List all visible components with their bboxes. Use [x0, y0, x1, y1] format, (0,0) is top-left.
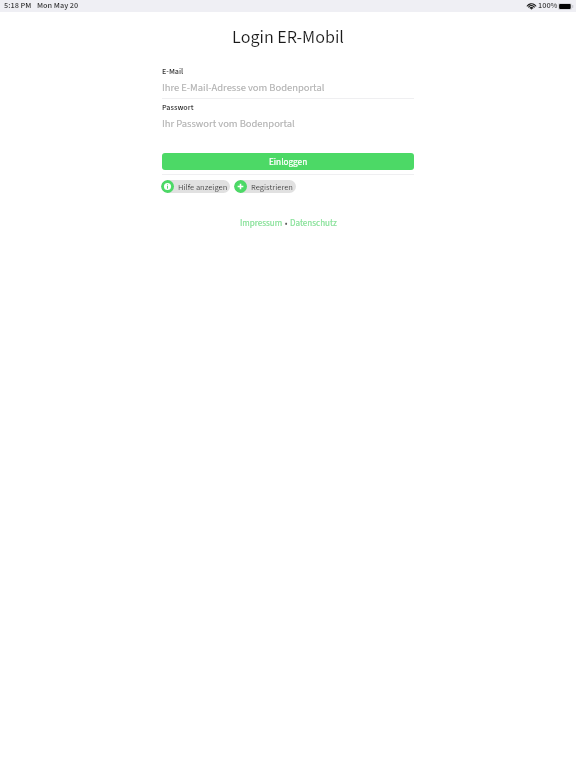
staticText: Ihre E-Mail-Adresse vom Bodenportal	[162, 80, 325, 95]
staticText: Einloggen	[269, 156, 308, 169]
staticText: Login ER-Mobil	[0, 25, 576, 51]
staticText: Hilfe anzeigen	[178, 181, 228, 193]
staticText: 100%	[538, 0, 558, 12]
staticText: •	[283, 217, 290, 230]
button[interactable]: Registrieren	[234, 180, 296, 193]
staticText: Registrieren	[251, 181, 293, 193]
staticText: Passwort	[162, 102, 194, 113]
staticText: Ihr Passwort vom Bodenportal	[162, 116, 295, 131]
button[interactable]: Datenschutz	[290, 217, 337, 230]
button[interactable]: Einloggen	[162, 153, 414, 170]
button[interactable]: Hilfe anzeigen	[161, 180, 230, 193]
staticText: E-Mail	[162, 66, 184, 77]
staticText: Mon May 20	[37, 0, 79, 12]
button[interactable]: Impressum	[240, 217, 283, 230]
staticText: 5:18 PM	[4, 0, 32, 12]
